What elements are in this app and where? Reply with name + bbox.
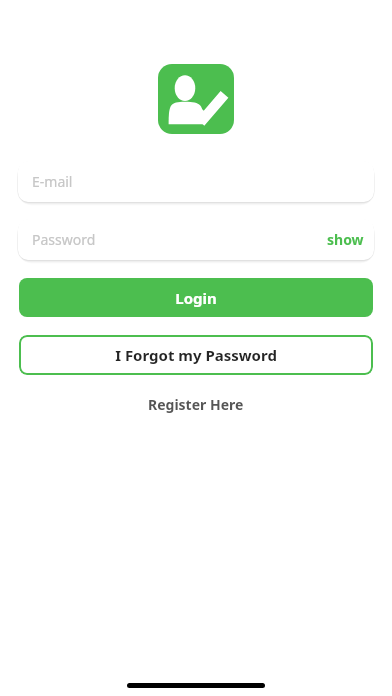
button[interactable]: Password — [18, 219, 374, 260]
staticText: Login — [175, 288, 217, 308]
staticText: show — [327, 230, 364, 249]
staticText: E-mail — [32, 172, 73, 191]
button[interactable]: Register Here — [132, 389, 260, 420]
button[interactable]: I Forgot my Password — [19, 335, 373, 375]
staticText: I Forgot my Password — [115, 345, 277, 365]
staticText: Password — [32, 230, 96, 249]
button[interactable]: show — [317, 222, 374, 257]
button[interactable]: E-mail — [18, 161, 374, 202]
staticText: Register Here — [148, 395, 244, 414]
button[interactable]: Login — [19, 278, 373, 317]
other: App logo — [158, 64, 234, 134]
